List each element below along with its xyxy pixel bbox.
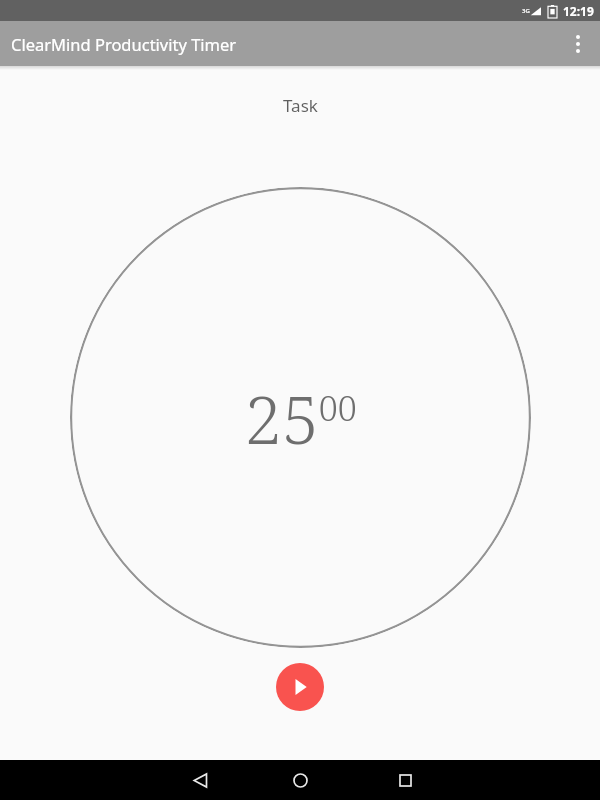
button[interactable]: Recent apps: [377, 760, 433, 800]
button[interactable]: Task: [283, 94, 318, 117]
staticText: 3G: [522, 7, 530, 15]
button[interactable]: Back: [172, 760, 228, 800]
button[interactable]: 2500: [70, 187, 531, 648]
button[interactable]: Start timer: [276, 663, 324, 711]
staticText: ClearMind Productivity Timer: [11, 33, 237, 55]
staticText: 2500: [245, 373, 357, 463]
staticText: 12:19: [563, 3, 594, 19]
button[interactable]: Home: [272, 760, 328, 800]
button[interactable]: More options: [556, 22, 600, 66]
